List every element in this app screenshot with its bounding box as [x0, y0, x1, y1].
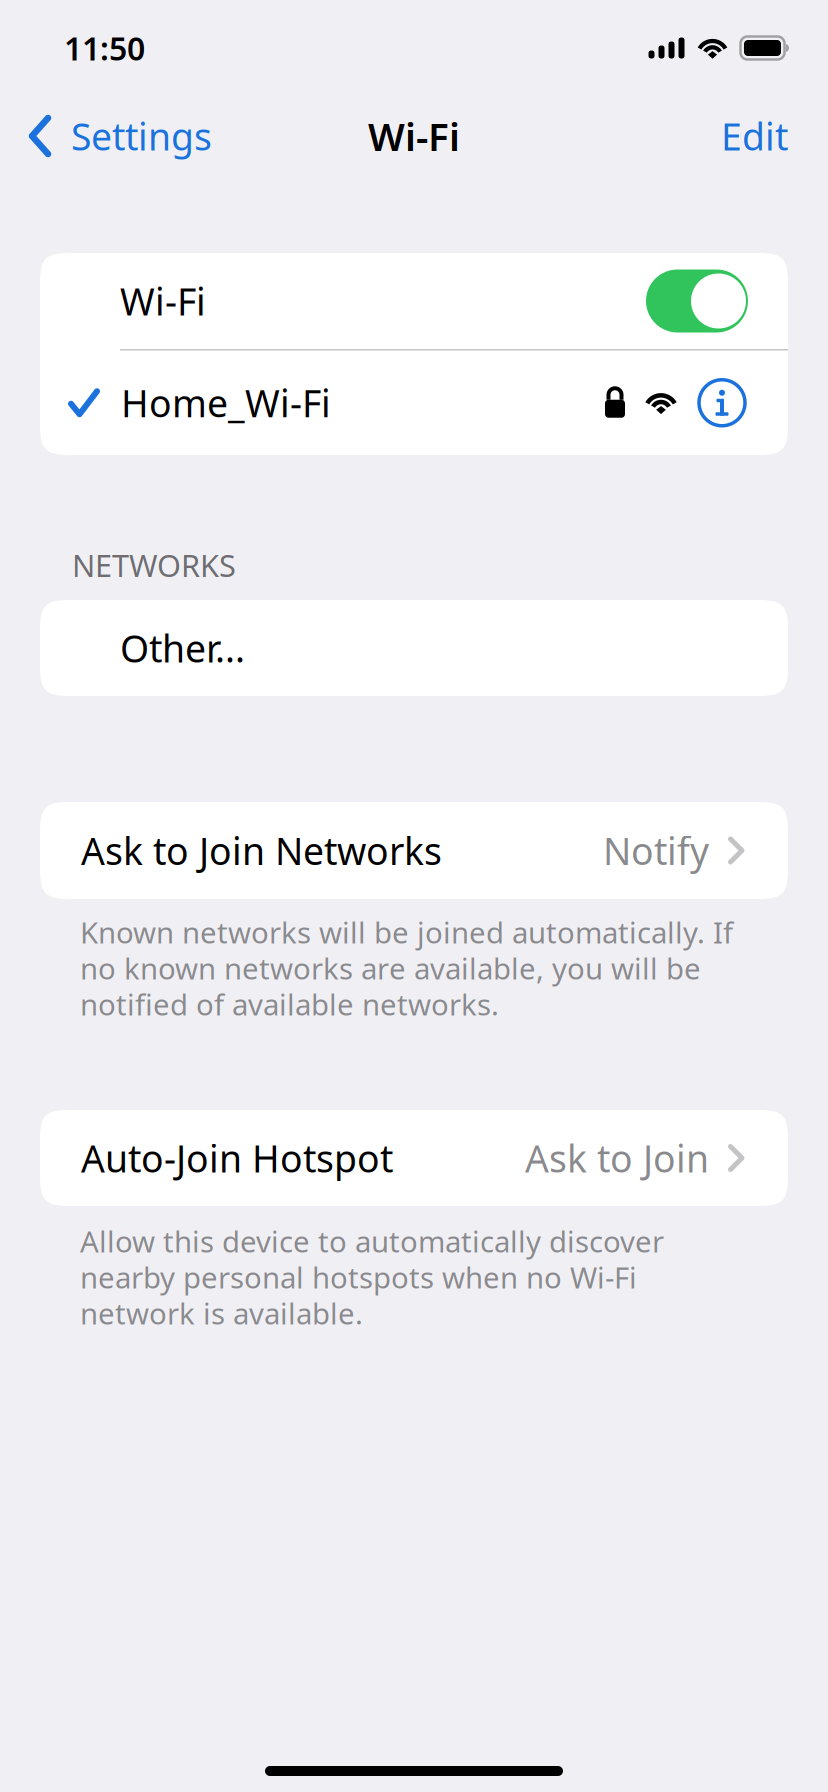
staticText: Settings — [71, 111, 212, 161]
staticText: Wi-Fi — [120, 276, 206, 326]
button[interactable]: Other... — [40, 600, 788, 696]
staticText: Ask to Join — [525, 1133, 709, 1183]
staticText: Wi-Fi — [368, 110, 460, 162]
staticText: Ask to Join Networks — [81, 826, 442, 875]
button[interactable]: Ask to Join Networks — [40, 802, 788, 899]
staticText: Other... — [120, 623, 245, 673]
staticText: Notify — [603, 826, 709, 875]
staticText: Edit — [721, 111, 788, 161]
staticText: no known networks are available, you wil… — [80, 948, 701, 987]
button[interactable]: Settings — [28, 96, 212, 176]
staticText: NETWORKS — [72, 545, 236, 585]
staticText: network is available. — [80, 1293, 363, 1332]
staticText: Home_Wi-Fi — [121, 378, 331, 428]
staticText: Known networks will be joined automatica… — [80, 912, 733, 951]
staticText: nearby personal hotspots when no Wi-Fi — [80, 1257, 637, 1296]
button[interactable]: Auto-Join Hotspot — [40, 1110, 788, 1206]
button[interactable]: Home_Wi-Fi — [40, 350, 788, 455]
staticText: 11:50 — [64, 27, 145, 69]
staticText: notified of available networks. — [80, 984, 499, 1023]
staticText: Auto-Join Hotspot — [81, 1133, 393, 1183]
button[interactable]: Wi-Fi — [40, 253, 788, 349]
button[interactable]: Edit — [721, 96, 788, 176]
staticText: Allow this device to automatically disco… — [80, 1221, 664, 1260]
